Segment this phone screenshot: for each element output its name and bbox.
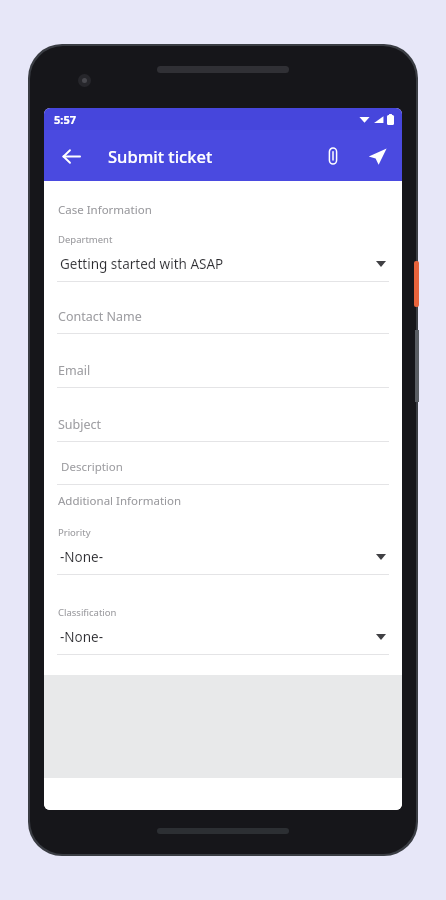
button[interactable]: Subject (44, 416, 402, 442)
button[interactable]: Department (44, 233, 402, 282)
staticText: Contact Name (58, 308, 142, 325)
staticText: -None- (60, 548, 104, 566)
staticText: -None- (60, 628, 104, 646)
button[interactable]: Contact Name (44, 308, 402, 334)
staticText: Submit ticket (108, 145, 213, 167)
staticText: Department (58, 233, 113, 246)
staticText: 5:57 (54, 112, 76, 127)
button[interactable]: Back (54, 139, 88, 173)
button[interactable]: Send (360, 139, 394, 173)
staticText: Additional Information (58, 493, 182, 509)
button[interactable]: Description (44, 459, 402, 485)
button[interactable]: Priority (44, 526, 402, 575)
button[interactable]: Classification (44, 606, 402, 655)
button[interactable]: Email (44, 362, 402, 388)
staticText: Subject (58, 416, 102, 433)
button[interactable]: Attach file (316, 139, 350, 173)
staticText: Getting started with ASAP (60, 255, 224, 273)
staticText: Email (58, 362, 91, 379)
staticText: Classification (58, 606, 117, 619)
staticText: Description (61, 459, 123, 475)
staticText: Case Information (58, 202, 152, 218)
staticText: Priority (58, 526, 91, 539)
